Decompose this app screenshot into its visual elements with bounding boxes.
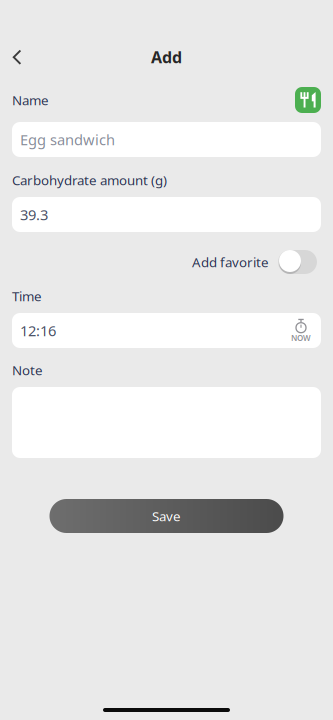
staticText: 39.3	[20, 205, 48, 224]
staticText: Carbohydrate amount (g)	[12, 171, 167, 189]
button[interactable]: Add favorite	[278, 250, 317, 274]
staticText: NOW	[291, 333, 311, 343]
button[interactable]: Time	[12, 313, 290, 348]
button[interactable]: Set time to now	[290, 318, 321, 343]
button[interactable]: Save	[49, 499, 283, 533]
staticText: Time	[12, 287, 42, 305]
staticText: Save	[152, 507, 181, 525]
button[interactable]: Name	[12, 122, 321, 157]
staticText: Add	[151, 46, 182, 68]
staticText: Add favorite	[192, 253, 269, 271]
button[interactable]: Back	[0, 42, 34, 72]
staticText: Note	[12, 361, 43, 379]
staticText: 12:16	[20, 321, 56, 340]
staticText: Egg sandwich	[20, 130, 115, 149]
staticText: Name	[12, 91, 49, 109]
button[interactable]: Pick food	[295, 87, 321, 113]
button[interactable]: Carbohydrate amount in grams	[12, 197, 321, 232]
